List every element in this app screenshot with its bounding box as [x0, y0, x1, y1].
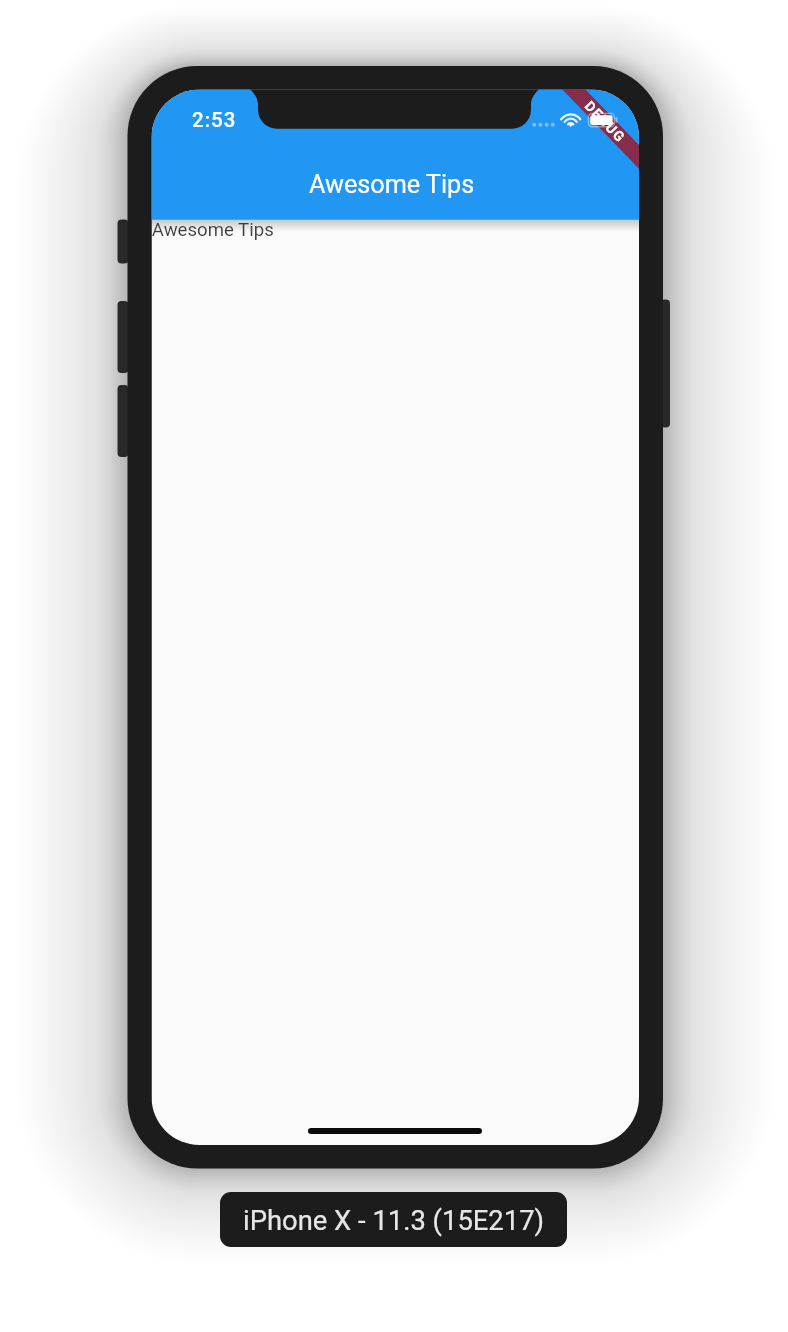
button[interactable]: iPhone X - 11.3 (15E217): [220, 1192, 567, 1247]
staticText: iPhone X - 11.3 (15E217): [243, 1205, 545, 1237]
